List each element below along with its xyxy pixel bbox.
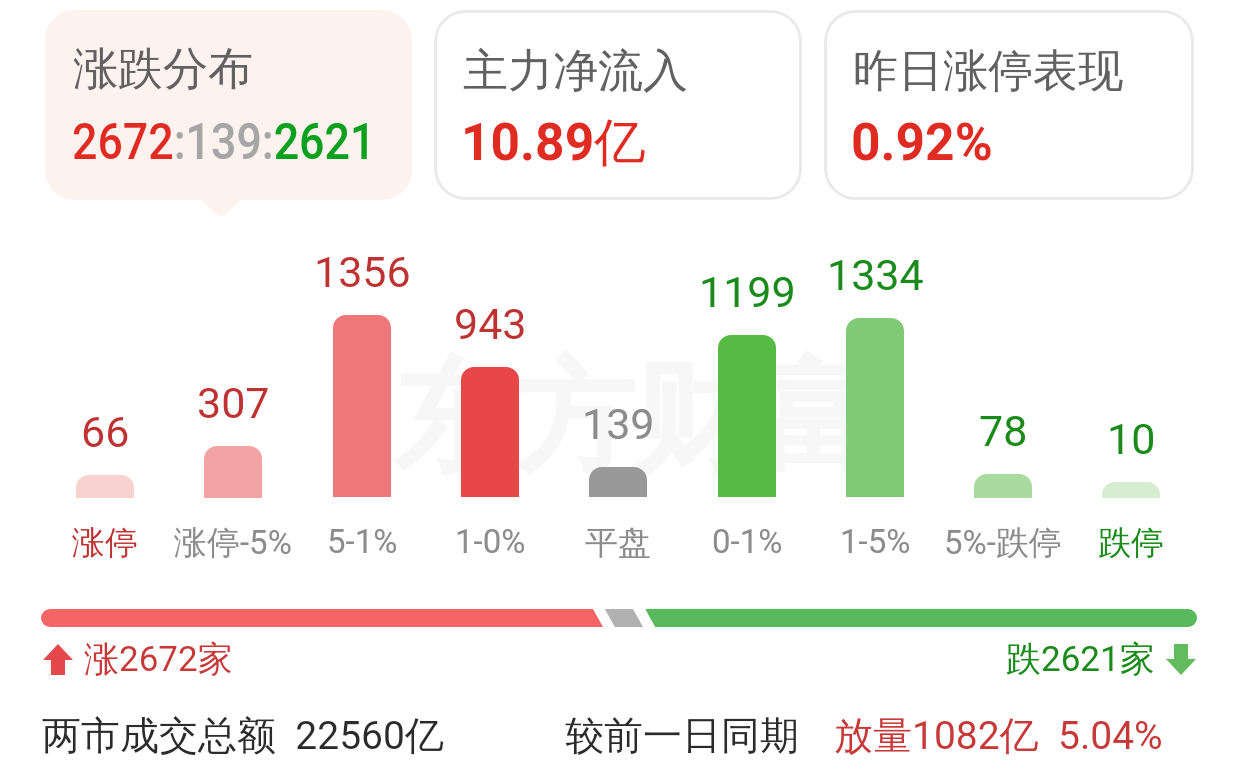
- staticText: 1356: [314, 247, 411, 297]
- button[interactable]: 主力净流入: [434, 10, 802, 200]
- staticText: 5-1%: [327, 522, 398, 561]
- other: 上涨: [43, 644, 73, 675]
- staticText: 10: [1107, 414, 1156, 464]
- staticText: 放量1082亿 5.04%: [834, 711, 1163, 760]
- staticText: 涨停: [72, 522, 138, 564]
- staticText: 1-0%: [455, 522, 526, 561]
- staticText: 两市成交总额 22560亿: [42, 711, 444, 760]
- staticText: 涨2672家: [84, 637, 233, 681]
- staticText: 139: [582, 399, 655, 449]
- staticText: 5%-跌停: [944, 522, 1062, 564]
- staticText: 2672:139:2621: [72, 113, 376, 172]
- staticText: 0.92%: [851, 112, 993, 172]
- staticText: 943: [454, 299, 527, 349]
- staticText: 跌2621家: [1006, 637, 1155, 681]
- staticText: 66: [81, 407, 130, 457]
- staticText: 跌停: [1098, 522, 1164, 564]
- button[interactable]: 上涨: [43, 637, 233, 681]
- staticText: 10.89亿: [461, 110, 646, 175]
- button[interactable]: 跌2621家: [1006, 637, 1196, 681]
- staticText: 东方财富: [393, 342, 877, 494]
- staticText: 307: [197, 378, 270, 428]
- staticText: 昨日涨停表现: [853, 43, 1123, 100]
- staticText: 1199: [699, 267, 796, 317]
- staticText: 较前一日同期: [565, 711, 799, 760]
- staticText: 1334: [827, 250, 924, 300]
- staticText: 主力净流入: [463, 43, 688, 100]
- staticText: 平盘: [585, 522, 651, 564]
- staticText: 1-5%: [840, 522, 911, 561]
- staticText: 78: [979, 406, 1028, 456]
- button[interactable]: 昨日涨停表现: [824, 10, 1194, 200]
- staticText: 涨跌分布: [73, 41, 253, 98]
- other: 下跌: [1166, 644, 1196, 675]
- staticText: 涨停-5%: [174, 522, 292, 564]
- button[interactable]: 涨跌分布: [45, 10, 412, 200]
- staticText: 0-1%: [712, 522, 783, 561]
